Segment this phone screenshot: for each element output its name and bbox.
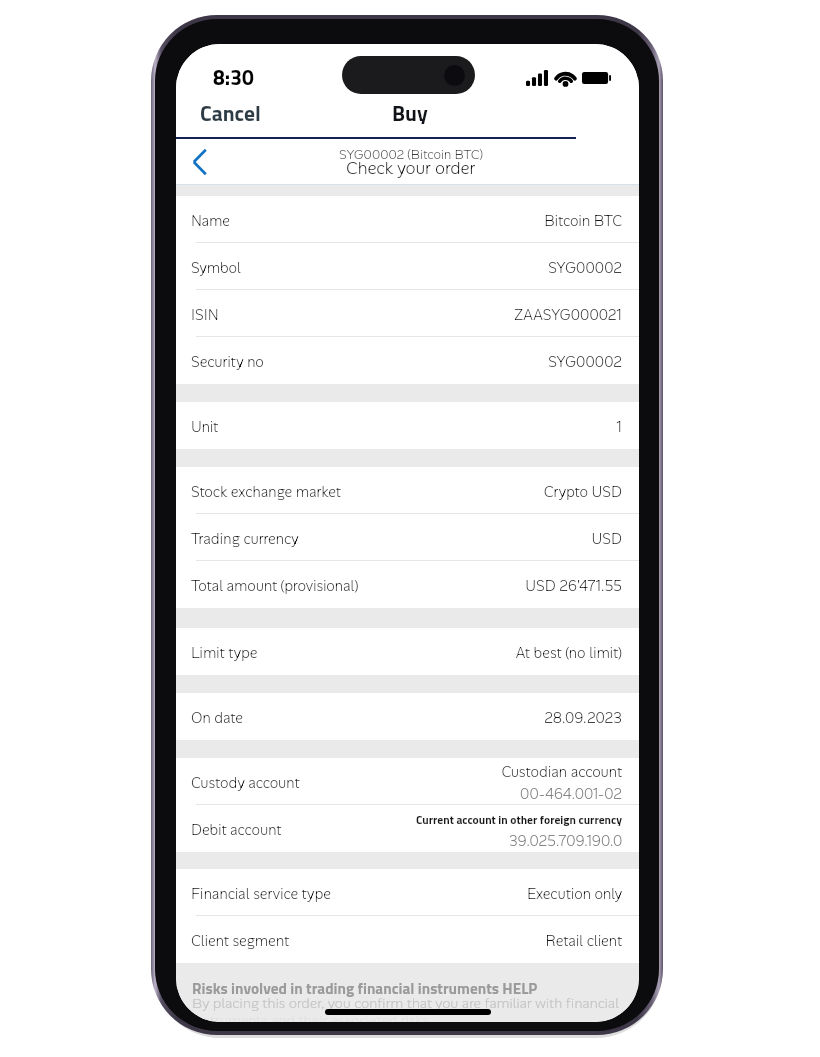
staticText: 00-464.001-02 [520, 785, 622, 804]
staticText: 39.025.709.190.0 [509, 832, 622, 851]
staticText: Limit type [191, 644, 258, 663]
staticText: Current account in other foreign currenc… [416, 811, 622, 829]
button[interactable]: Symbol [176, 243, 639, 290]
staticText: Debit account [191, 821, 282, 840]
staticText: 1 [616, 418, 622, 437]
staticText: Custodian account [501, 763, 622, 782]
button[interactable]: Cancel [186, 96, 275, 139]
staticText: Stock exchange market [191, 483, 341, 502]
staticText: Buy [392, 97, 428, 124]
staticText: On date [191, 709, 243, 728]
staticText: Crypto USD [543, 483, 622, 502]
button[interactable]: Name [176, 196, 639, 243]
button[interactable]: ISIN [176, 290, 639, 337]
button[interactable]: Total amount (provisional) [176, 561, 639, 608]
staticText: ZAASYG000021 [514, 306, 622, 325]
staticText: 8:30 [213, 61, 254, 93]
staticText: SYG00002 (Bitcoin BTC) [339, 146, 483, 163]
staticText: Financial service type [191, 885, 331, 904]
button[interactable]: Buy [376, 96, 444, 139]
button[interactable]: Trading currency [176, 514, 639, 561]
staticText: Name [191, 212, 230, 231]
staticText: Trading currency [191, 530, 299, 549]
staticText: ISIN [191, 306, 219, 325]
button[interactable]: On date [176, 693, 639, 740]
staticText: Custody account [191, 774, 300, 793]
staticText: instruments and their associated risks. [192, 1011, 433, 1022]
staticText: Execution only [526, 885, 622, 904]
staticText: Unit [191, 418, 219, 437]
staticText: Risks involved in trading financial inst… [192, 977, 538, 1000]
staticText: SYG00002 [548, 259, 622, 278]
staticText: 28.09.2023 [544, 709, 622, 728]
staticText: Symbol [191, 259, 241, 278]
staticText: Total amount (provisional) [191, 577, 359, 596]
button[interactable]: Security no [176, 337, 639, 384]
staticText: At best (no limit) [515, 644, 622, 663]
button[interactable]: Client segment [176, 916, 639, 963]
staticText: Bitcoin BTC [544, 212, 622, 231]
staticText: Check your order [346, 157, 476, 179]
button[interactable]: Back [176, 139, 222, 185]
staticText: USD [591, 530, 622, 549]
staticText: USD 26'471.55 [525, 577, 622, 596]
staticText: SYG00002 [548, 353, 622, 372]
staticText: Security no [191, 353, 264, 372]
staticText: Client segment [191, 932, 290, 951]
staticText: Cancel [200, 97, 261, 124]
button[interactable]: Financial service type [176, 869, 639, 916]
button[interactable]: Stock exchange market [176, 467, 639, 514]
button[interactable]: Debit account [176, 805, 639, 852]
button[interactable]: Limit type [176, 628, 639, 675]
staticText: By placing this order, you confirm that … [192, 994, 620, 1012]
button[interactable]: Unit [176, 402, 639, 449]
button[interactable]: Custody account [176, 758, 639, 805]
staticText: Retail client [545, 932, 622, 951]
